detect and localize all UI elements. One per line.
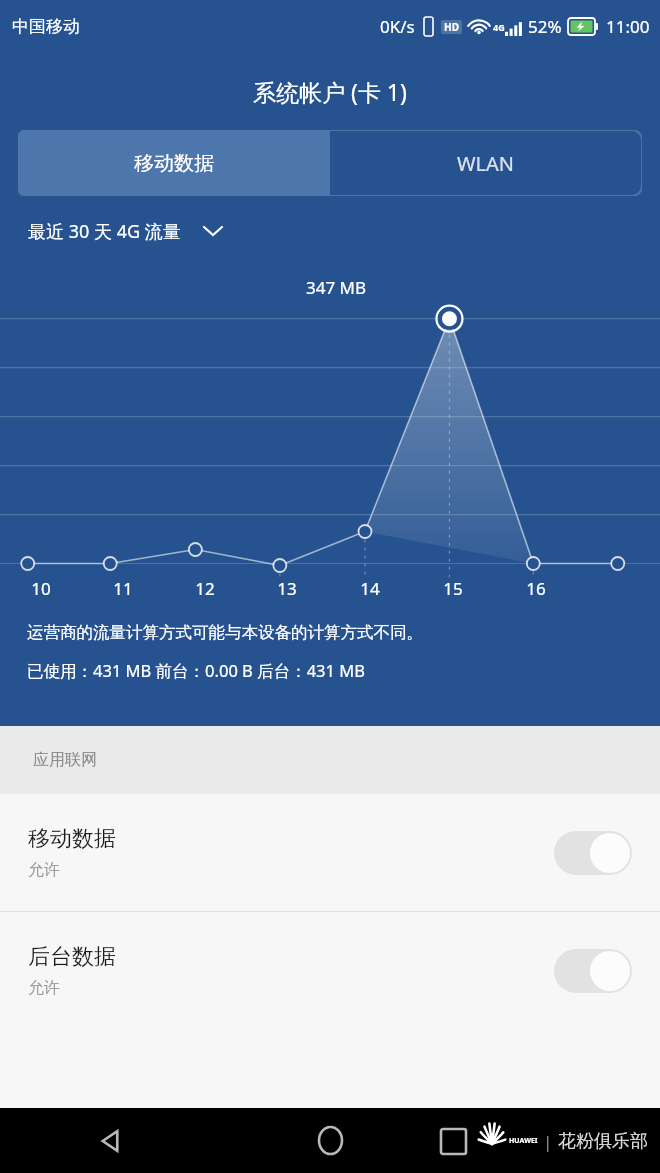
button[interactable]: 后台数据 [0,912,660,1029]
staticText: 15 [443,577,463,600]
button[interactable]: 移动数据 toggle [554,831,632,875]
button[interactable]: Recents [431,1119,475,1163]
staticText: 运营商的流量计算方式可能与本设备的计算方式不同。 [27,622,423,643]
staticText: 允许 [28,860,60,880]
button[interactable]: Back [0,1108,220,1173]
staticText: 允许 [28,978,60,998]
staticText: HD [444,20,459,34]
staticText: 11 [113,577,133,600]
staticText: HUAWEI [509,1136,538,1146]
button[interactable]: 最近 30 天 4G 流量 [0,196,660,266]
staticText: 系统帐户 (卡 1) [253,76,407,107]
staticText: | [543,1130,553,1153]
button[interactable]: 移动数据 [0,794,660,911]
button[interactable]: 移动数据 [18,130,330,196]
staticText: 4G [493,21,505,33]
button[interactable]: WLAN [330,130,642,196]
staticText: 移动数据 [134,151,214,176]
button[interactable]: 后台数据 toggle [554,949,632,993]
staticText: 16 [526,577,546,600]
staticText: 52% [528,15,562,38]
staticText: 后台数据 [28,943,116,971]
staticText: 最近 30 天 4G 流量 [28,219,181,244]
staticText: WLAN [457,150,515,177]
staticText: 应用联网 [33,750,97,770]
staticText: 花粉俱乐部 [558,1130,648,1153]
staticText: 中国移动 [12,16,80,37]
staticText: 347 MB [306,276,367,299]
staticText: 0K/s [380,15,415,38]
staticText: 14 [360,577,380,600]
button[interactable]: Home [290,1108,370,1173]
staticText: 12 [195,577,215,600]
staticText: 10 [31,577,51,600]
staticText: 11:00 [606,15,650,38]
staticText: 移动数据 [28,825,116,853]
staticText: 13 [277,577,297,600]
staticText: 已使用：431 MB 前台：0.00 B 后台：431 MB [27,659,365,682]
